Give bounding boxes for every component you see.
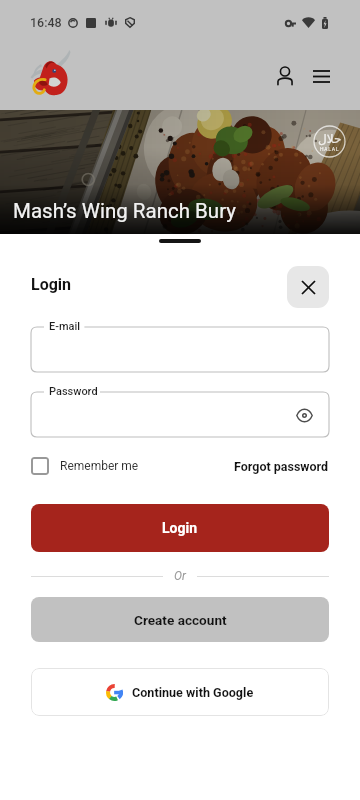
button[interactable]: Show password xyxy=(293,404,315,426)
staticText: حلال xyxy=(318,132,342,146)
button[interactable]: Remember me xyxy=(31,453,139,479)
button[interactable]: Forgot password xyxy=(234,455,329,478)
staticText: E-mail xyxy=(49,320,81,333)
staticText: Login xyxy=(162,520,198,536)
staticText: Login xyxy=(31,275,72,294)
staticText: Or xyxy=(174,569,186,583)
button[interactable]: Continue with Google xyxy=(31,668,329,716)
button[interactable]: Create account xyxy=(31,597,329,642)
button[interactable]: Menu xyxy=(300,55,342,97)
button[interactable]: Close xyxy=(287,266,329,308)
staticText: Continue with Google xyxy=(132,685,254,700)
staticText: Remember me xyxy=(60,459,139,473)
staticText: HALAL xyxy=(320,146,340,152)
staticText: Forgot password xyxy=(234,459,329,474)
staticText: Password xyxy=(49,385,98,398)
staticText: Mash’s Wing Ranch Bury xyxy=(13,199,236,223)
staticText: 16:48 xyxy=(30,15,62,30)
staticText: Create account xyxy=(134,612,227,628)
button[interactable]: Account xyxy=(264,55,306,97)
button[interactable]: Login xyxy=(31,504,329,552)
